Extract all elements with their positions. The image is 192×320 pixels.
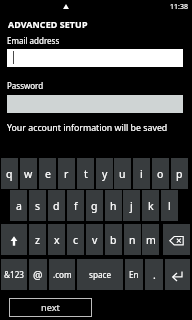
staticText: p xyxy=(176,167,183,181)
staticText: Your account information will be saved xyxy=(7,122,168,134)
button[interactable]: &123 xyxy=(1,259,27,290)
button[interactable]: n xyxy=(124,224,141,255)
button[interactable]: m xyxy=(142,224,159,255)
staticText: Password xyxy=(7,80,44,91)
button[interactable]: Enter xyxy=(165,259,190,290)
button[interactable]: @ xyxy=(29,259,47,290)
button[interactable]: w xyxy=(20,158,37,189)
staticText: space xyxy=(89,269,112,280)
staticText: o xyxy=(157,167,164,181)
button[interactable]: g xyxy=(86,190,103,221)
button[interactable]: k xyxy=(142,190,159,221)
button[interactable]: e xyxy=(39,158,56,189)
staticText: v xyxy=(92,233,98,247)
button[interactable]: s xyxy=(29,190,46,221)
staticText: 11:38 xyxy=(170,2,188,12)
button[interactable]: r xyxy=(58,158,75,189)
button[interactable]: t xyxy=(77,158,94,189)
staticText: r xyxy=(64,167,69,181)
button[interactable]: l xyxy=(161,190,178,221)
button[interactable]: u xyxy=(114,158,131,189)
staticText: Email address xyxy=(7,35,60,46)
staticText: t xyxy=(84,167,88,181)
button[interactable]: d xyxy=(48,190,65,221)
staticText: z xyxy=(35,233,40,247)
staticText: c xyxy=(73,233,79,247)
button[interactable]: .com xyxy=(49,259,75,290)
other: Signal strength xyxy=(63,4,69,9)
staticText: @ xyxy=(33,268,43,282)
staticText: m xyxy=(146,233,156,247)
staticText: next xyxy=(41,301,60,314)
staticText: f xyxy=(74,199,78,213)
button[interactable]: q xyxy=(1,158,18,189)
staticText: q xyxy=(6,167,13,181)
button[interactable]: j xyxy=(123,190,140,221)
button[interactable]: y xyxy=(96,158,113,189)
button[interactable]: . xyxy=(145,259,163,290)
button[interactable]: b xyxy=(105,224,122,255)
staticText: l xyxy=(168,199,171,213)
staticText: s xyxy=(35,199,41,213)
button[interactable]: z xyxy=(29,224,46,255)
staticText: e xyxy=(45,167,51,181)
staticText: g xyxy=(91,199,98,213)
staticText: h xyxy=(110,199,117,213)
staticText: ADVANCED SETUP xyxy=(8,18,88,30)
staticText: b xyxy=(110,233,117,247)
button[interactable]: f xyxy=(67,190,84,221)
staticText: n xyxy=(129,233,136,247)
button[interactable]: x xyxy=(48,224,65,255)
button[interactable]: h xyxy=(105,190,122,221)
staticText: k xyxy=(148,199,154,213)
staticText: a xyxy=(16,199,22,213)
button[interactable]: o xyxy=(152,158,169,189)
staticText: x xyxy=(54,233,60,247)
button[interactable]: space xyxy=(77,259,123,290)
staticText: . xyxy=(153,268,156,282)
button[interactable]: Backspace xyxy=(163,224,190,255)
staticText: .com xyxy=(53,269,72,280)
button[interactable]: i xyxy=(133,158,150,189)
staticText: En xyxy=(129,269,139,280)
staticText: u xyxy=(119,167,126,181)
staticText: y xyxy=(102,167,108,181)
button[interactable]: v xyxy=(86,224,103,255)
button[interactable]: a xyxy=(10,190,27,221)
button[interactable]: c xyxy=(67,224,84,255)
staticText: d xyxy=(53,199,60,213)
button[interactable]: En xyxy=(125,259,143,290)
button[interactable]: Shift xyxy=(1,224,27,255)
staticText: w xyxy=(24,167,33,181)
button[interactable]: p xyxy=(171,158,188,189)
staticText: &123 xyxy=(4,269,25,280)
button[interactable]: next xyxy=(9,298,92,317)
staticText: i xyxy=(140,167,143,181)
staticText: j xyxy=(130,199,133,213)
button[interactable] xyxy=(7,49,183,67)
